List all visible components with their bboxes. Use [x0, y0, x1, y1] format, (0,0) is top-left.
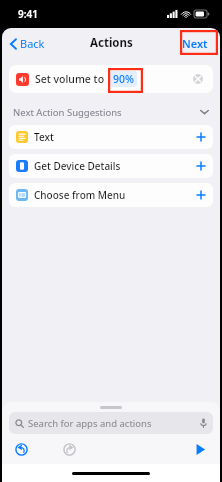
staticText: 9:41 — [18, 7, 38, 21]
button[interactable]: Back — [7, 32, 48, 55]
staticText: Back — [20, 36, 45, 51]
button[interactable]: Next Action Suggestions — [13, 104, 209, 120]
button[interactable]: 90% — [110, 71, 137, 87]
staticText: Choose from Menu — [34, 188, 126, 202]
staticText: Search for apps and actions — [28, 417, 152, 430]
button[interactable]: Search for apps and actions — [9, 412, 213, 434]
button[interactable]: Redo — [60, 440, 78, 458]
staticText: Next Action Suggestions — [13, 106, 122, 119]
staticText: 90% — [113, 72, 134, 86]
staticText: Text — [34, 130, 54, 144]
button[interactable]: Remove action — [190, 71, 206, 87]
staticText: Set volume to — [35, 72, 105, 86]
button[interactable]: Choose from Menu — [9, 183, 213, 207]
button[interactable]: Run shortcut — [190, 439, 210, 459]
staticText: Get Device Details — [34, 159, 121, 173]
button[interactable]: Get Device Details — [9, 154, 213, 178]
button[interactable]: Text — [9, 125, 213, 149]
button[interactable]: Undo — [12, 440, 30, 458]
button[interactable]: Next — [178, 32, 212, 55]
staticText: Actions — [90, 35, 133, 51]
button[interactable]: Set volume to — [9, 65, 213, 93]
other: Voice search — [200, 418, 207, 428]
staticText: Next — [182, 36, 208, 51]
